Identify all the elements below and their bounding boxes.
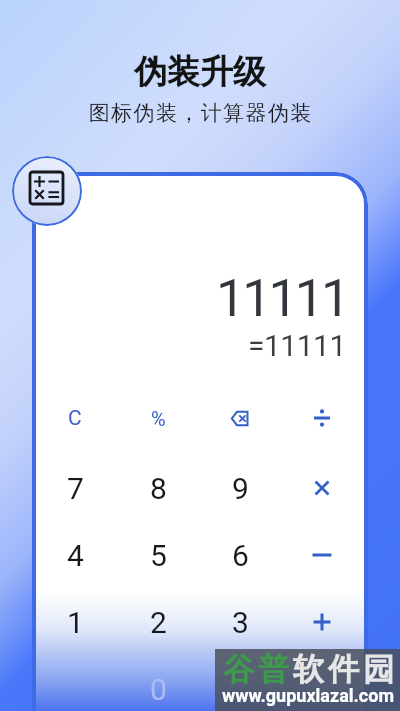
button[interactable]: 7 (40, 461, 110, 515)
button[interactable]: 5 (123, 528, 193, 582)
staticText: 9 (232, 471, 249, 506)
staticText: 0 (150, 672, 167, 707)
button[interactable] (205, 391, 275, 445)
staticText: 8 (150, 471, 167, 506)
staticText: www.gupuxlazal.com (222, 685, 394, 706)
staticText: 伪装升级 (134, 51, 266, 93)
button[interactable]: 4 (40, 528, 110, 582)
button[interactable]: C (40, 391, 110, 445)
staticText: 谷普 (221, 650, 291, 689)
button[interactable]: 8 (123, 461, 193, 515)
staticText: C (68, 406, 82, 431)
staticText: 2 (150, 605, 167, 640)
staticText: 7 (67, 471, 84, 506)
staticText: 6 (232, 538, 249, 573)
staticText: =11111 (248, 328, 346, 363)
button[interactable] (287, 528, 357, 582)
button[interactable]: 谷普 (215, 649, 400, 711)
button[interactable]: % (123, 391, 193, 445)
staticText: 5 (150, 538, 167, 573)
button[interactable]: 0 (123, 662, 193, 711)
button[interactable] (287, 595, 357, 649)
button[interactable] (287, 461, 357, 515)
button[interactable]: 2 (123, 595, 193, 649)
button[interactable]: 6 (205, 528, 275, 582)
staticText: 软件园 (291, 650, 396, 689)
staticText: 11111 (216, 268, 348, 329)
button[interactable] (12, 156, 82, 226)
button[interactable]: 9 (205, 461, 275, 515)
staticText: % (151, 407, 166, 430)
button[interactable] (287, 391, 357, 445)
staticText: 1 (67, 605, 84, 640)
staticText: 3 (232, 605, 249, 640)
button[interactable]: 3 (205, 595, 275, 649)
staticText: 图标伪装，计算器伪装 (88, 100, 312, 126)
staticText: 4 (67, 538, 84, 573)
button[interactable]: 1 (40, 595, 110, 649)
